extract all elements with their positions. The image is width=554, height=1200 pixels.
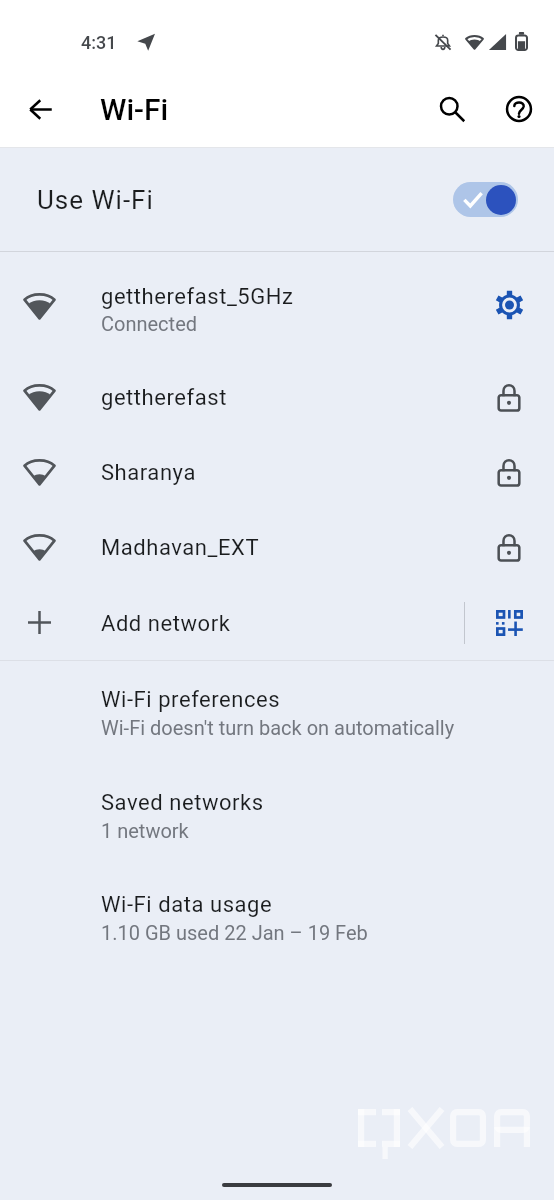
button[interactable]: Secured network [485,448,533,496]
staticText: Madhavan_EXT [101,535,260,561]
button[interactable]: Sharanya [0,434,554,509]
button[interactable]: Secured network [485,523,533,571]
button[interactable]: Use Wi-Fi toggle [453,182,518,217]
button[interactable]: gettherefast_5GHz [0,252,554,359]
staticText: Use Wi-Fi [37,185,154,215]
staticText: gettherefast_5GHz [101,284,294,310]
button[interactable]: Network details [485,281,533,329]
button[interactable]: gettherefast [0,359,554,434]
button[interactable]: Madhavan_EXT [0,509,554,584]
button[interactable]: Use Wi-Fi [0,148,554,251]
staticText: Connected [101,312,198,335]
staticText: Wi-Fi [100,92,169,127]
button[interactable]: Back [14,83,66,135]
button[interactable]: Search [426,83,478,135]
staticText: Wi-Fi preferences [101,687,281,713]
button[interactable]: Wi-Fi data usage [0,866,554,969]
button[interactable]: Wi-Fi preferences [0,661,554,764]
button[interactable]: Help [493,83,545,135]
staticText: gettherefast [101,385,227,411]
staticText: Saved networks [101,790,264,816]
staticText: 1 network [101,819,189,842]
staticText: 1.10 GB used 22 Jan – 19 Feb [101,921,368,944]
button[interactable]: Add network [0,585,554,660]
staticText: Wi-Fi data usage [101,892,273,918]
staticText: Add network [101,611,231,637]
staticText: Wi-Fi doesn't turn back on automatically [101,716,455,739]
button[interactable]: Saved networks [0,764,554,867]
staticText: Sharanya [101,460,196,486]
button[interactable]: Secured network [485,373,533,421]
button[interactable]: Scan QR code [485,599,533,647]
staticText: 4:31 [81,32,117,53]
